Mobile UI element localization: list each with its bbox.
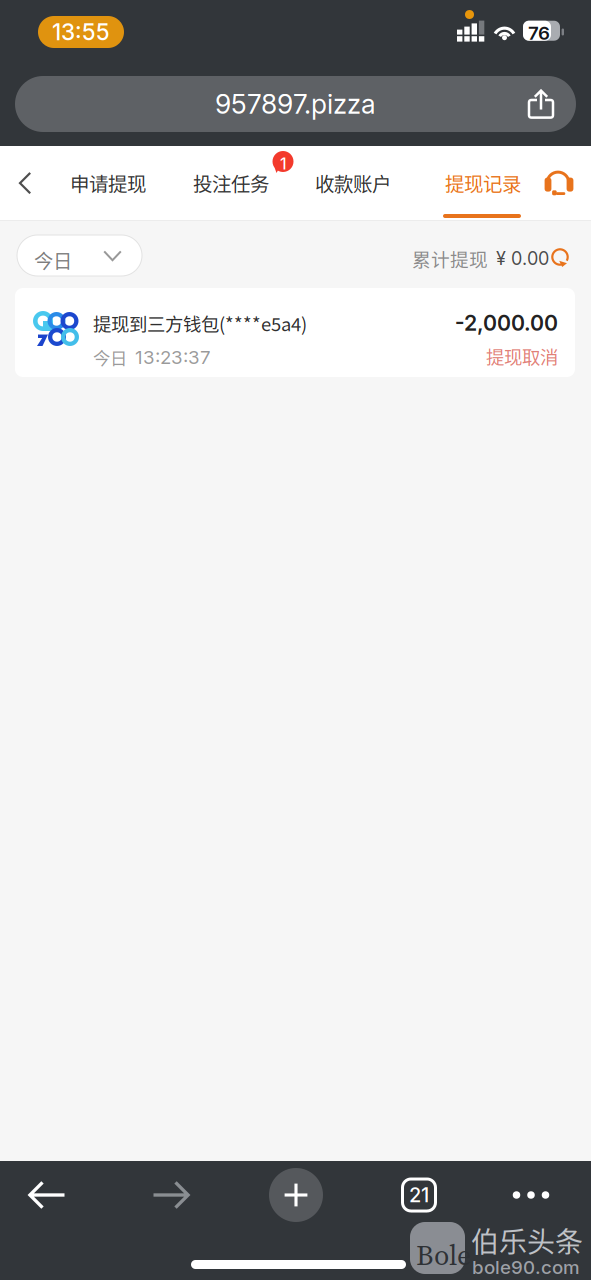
button[interactable]: Refresh bbox=[550, 247, 570, 267]
staticText: 今日 bbox=[93, 345, 127, 370]
staticText: 伯乐头条 bbox=[471, 1220, 583, 1260]
staticText: 76 bbox=[528, 22, 550, 44]
staticText: 投注任务 bbox=[193, 169, 269, 197]
button[interactable]: 收款账户 bbox=[305, 146, 401, 220]
button[interactable]: 提现记录 bbox=[435, 146, 531, 220]
staticText: 13:23:37 bbox=[135, 346, 211, 368]
staticText: 提现取消 bbox=[486, 343, 558, 369]
staticText: bole90.com bbox=[472, 1256, 580, 1279]
staticText: 1 bbox=[280, 154, 287, 173]
staticText: 今日 bbox=[34, 246, 72, 274]
button[interactable]: Back bbox=[10, 1163, 84, 1227]
staticText: Bole bbox=[416, 1236, 471, 1274]
button[interactable]: 投注任务 bbox=[183, 146, 279, 220]
staticText: 21 bbox=[409, 1183, 429, 1207]
staticText: ¥ 0.00 bbox=[496, 248, 549, 269]
button[interactable]: Tabs bbox=[382, 1163, 456, 1227]
staticText: 累计提现 bbox=[412, 245, 488, 272]
staticText: 收款账户 bbox=[315, 169, 391, 197]
staticText: 提现记录 bbox=[445, 169, 521, 197]
button[interactable]: Forward bbox=[134, 1163, 208, 1227]
button[interactable]: 提现到三方钱包(****e5a4) bbox=[15, 288, 575, 377]
staticText: 13:55 bbox=[52, 18, 110, 46]
button[interactable]: 957897.pizza bbox=[15, 76, 576, 132]
button[interactable]: New Tab bbox=[259, 1163, 333, 1227]
staticText: 提现到三方钱包(****e5a4) bbox=[93, 310, 307, 337]
staticText: -2,000.00 bbox=[455, 310, 558, 336]
staticText: 申请提现 bbox=[70, 169, 146, 197]
button[interactable]: 今日 bbox=[17, 235, 142, 276]
button[interactable]: 申请提现 bbox=[60, 146, 156, 220]
button[interactable]: Customer service bbox=[537, 144, 581, 220]
button[interactable]: Back bbox=[0, 146, 50, 220]
button[interactable]: More bbox=[494, 1163, 568, 1227]
staticText: 957897.pizza bbox=[215, 88, 376, 120]
